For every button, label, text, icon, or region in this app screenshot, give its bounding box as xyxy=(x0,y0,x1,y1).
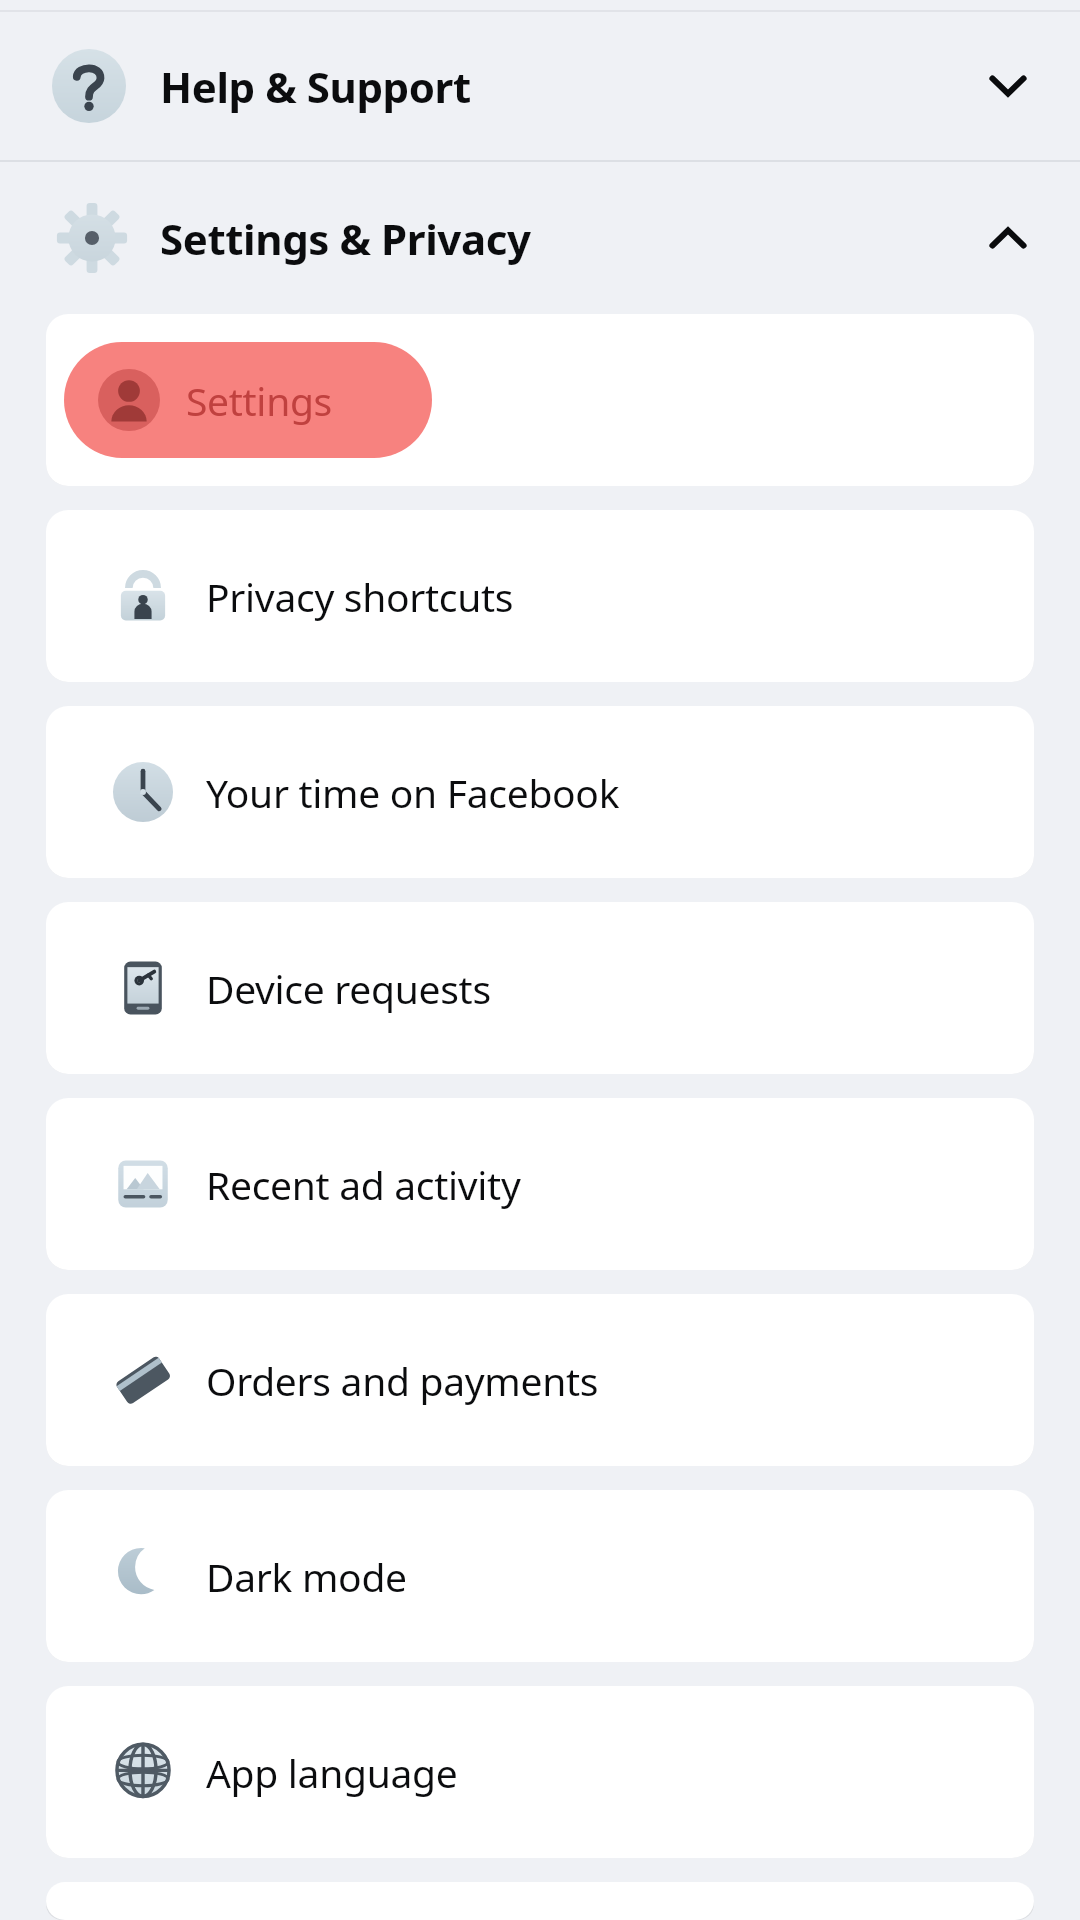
button[interactable]: Settings & Privacy xyxy=(0,162,1080,314)
staticText: Dark mode xyxy=(206,1550,407,1603)
other: Expand section xyxy=(982,60,1034,112)
button[interactable]: App language xyxy=(46,1686,1034,1858)
button[interactable]: Orders and payments xyxy=(46,1294,1034,1466)
button[interactable]: Recent ad activity xyxy=(46,1098,1034,1270)
staticText: Settings & Privacy xyxy=(160,210,531,267)
staticText: App language xyxy=(206,1746,458,1799)
button[interactable]: Dark mode xyxy=(46,1490,1034,1662)
button[interactable]: Help & Support xyxy=(0,12,1080,160)
staticText: Recent ad activity xyxy=(206,1158,521,1211)
other: Collapse section xyxy=(982,212,1034,264)
button[interactable]: Privacy shortcuts xyxy=(46,510,1034,682)
staticText: Settings xyxy=(186,374,332,427)
staticText: Help & Support xyxy=(160,58,471,115)
button[interactable]: Settings xyxy=(64,342,432,458)
staticText: Your time on Facebook xyxy=(206,766,620,819)
button[interactable]: Settings xyxy=(46,314,1034,486)
staticText: Privacy shortcuts xyxy=(206,570,514,623)
button[interactable]: Your time on Facebook xyxy=(46,706,1034,878)
staticText: Orders and payments xyxy=(206,1354,599,1407)
button[interactable]: Device requests xyxy=(46,902,1034,1074)
staticText: Device requests xyxy=(206,962,491,1015)
